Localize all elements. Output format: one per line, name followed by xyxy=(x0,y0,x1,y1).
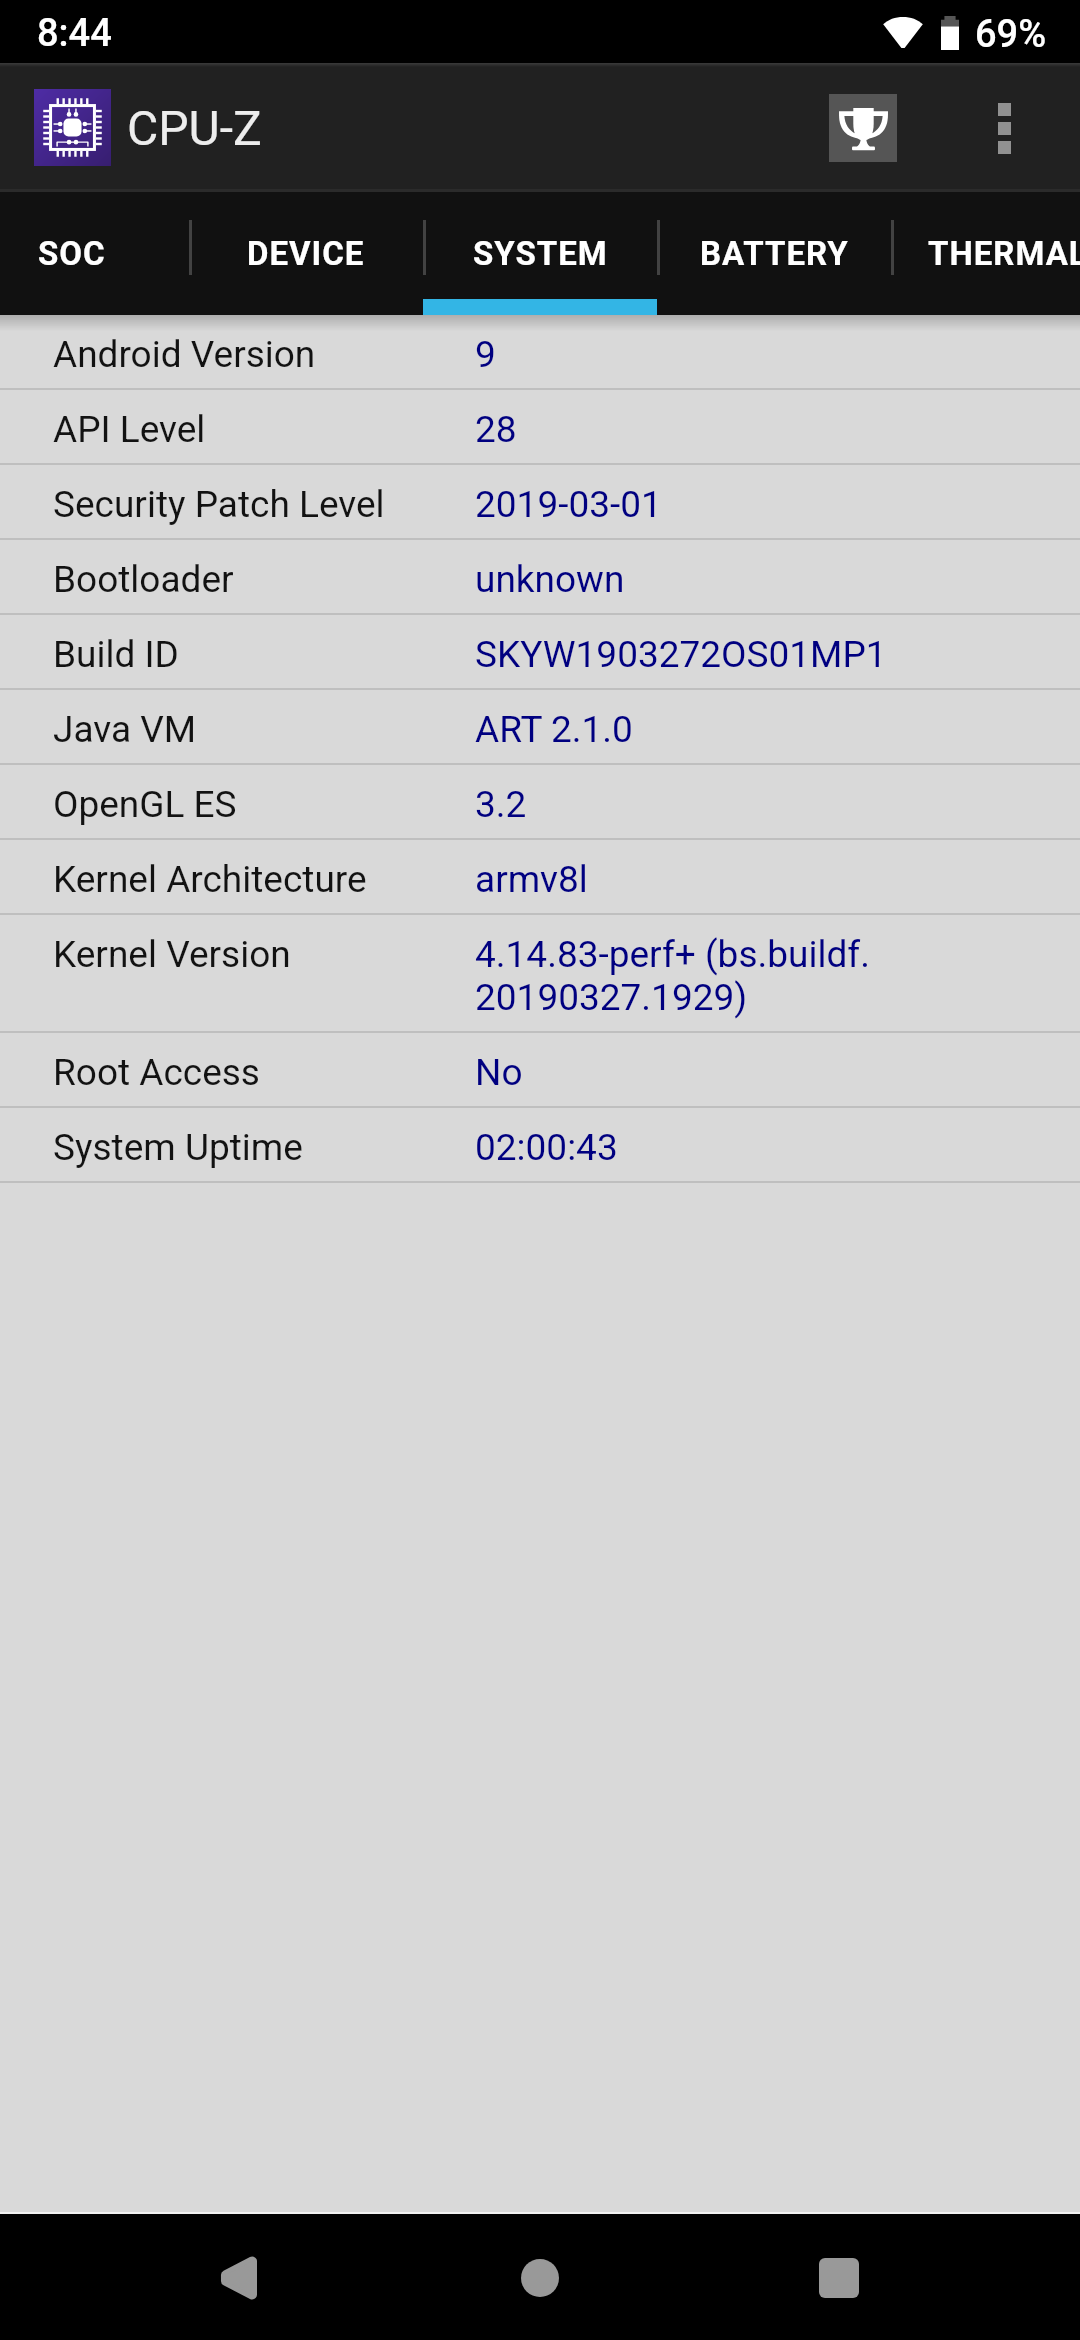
staticText: Android Version xyxy=(53,333,475,376)
button[interactable]: Benchmark xyxy=(829,94,897,162)
staticText: Java VM xyxy=(53,708,475,751)
staticText: ART 2.1.0 xyxy=(475,708,633,751)
staticText: SOC xyxy=(38,234,106,273)
staticText: 28 xyxy=(475,408,517,451)
button[interactable]: DEVICE xyxy=(189,192,423,315)
staticText: SYSTEM xyxy=(473,234,608,273)
button[interactable]: Home xyxy=(450,2214,630,2340)
staticText: 02:00:43 xyxy=(475,1126,618,1169)
staticText: API Level xyxy=(53,408,475,451)
button[interactable]: Java VM xyxy=(0,690,1080,765)
button[interactable]: SOC xyxy=(0,192,189,315)
staticText: unknown xyxy=(475,558,625,601)
button[interactable]: THERMAL xyxy=(891,192,1080,315)
staticText: 2019-03-01 xyxy=(475,483,662,526)
button[interactable]: API Level xyxy=(0,390,1080,465)
staticText: 3.2 xyxy=(475,783,527,826)
staticText: Build ID xyxy=(53,633,475,676)
button[interactable]: Security Patch Level xyxy=(0,465,1080,540)
staticText: Bootloader xyxy=(53,558,475,601)
staticText: BATTERY xyxy=(700,234,849,273)
button[interactable]: Back xyxy=(148,2214,328,2340)
staticText: armv8l xyxy=(475,858,588,901)
button[interactable]: Recents xyxy=(749,2214,929,2340)
button[interactable]: BATTERY xyxy=(657,192,891,315)
button[interactable]: Kernel Architecture xyxy=(0,840,1080,915)
button[interactable]: More options xyxy=(963,78,1045,178)
staticText: DEVICE xyxy=(247,234,365,273)
staticText: CPU-Z xyxy=(127,100,262,156)
staticText: Security Patch Level xyxy=(53,483,475,526)
button[interactable]: Build ID xyxy=(0,615,1080,690)
button[interactable]: Root Access xyxy=(0,1033,1080,1108)
staticText: 69% xyxy=(975,12,1047,57)
staticText: 9 xyxy=(475,333,496,376)
staticText: SKYW1903272OS01MP1 xyxy=(475,633,887,676)
button[interactable]: SYSTEM xyxy=(423,192,657,315)
staticText: 4.14.83-perf+ (bs.buildf. 20190327.1929) xyxy=(475,933,870,1019)
staticText: OpenGL ES xyxy=(53,783,475,826)
button[interactable]: Bootloader xyxy=(0,540,1080,615)
button[interactable]: System Uptime xyxy=(0,1108,1080,1183)
staticText: 8:44 xyxy=(37,11,112,56)
staticText: Kernel Version xyxy=(53,933,475,976)
button[interactable]: OpenGL ES xyxy=(0,765,1080,840)
button[interactable]: Kernel Version xyxy=(0,915,1080,1033)
staticText: THERMAL xyxy=(928,234,1080,273)
staticText: Kernel Architecture xyxy=(53,858,475,901)
staticText: Root Access xyxy=(53,1051,475,1094)
staticText: No xyxy=(475,1051,523,1094)
button[interactable]: Android Version xyxy=(0,315,1080,390)
staticText: System Uptime xyxy=(53,1126,475,1169)
